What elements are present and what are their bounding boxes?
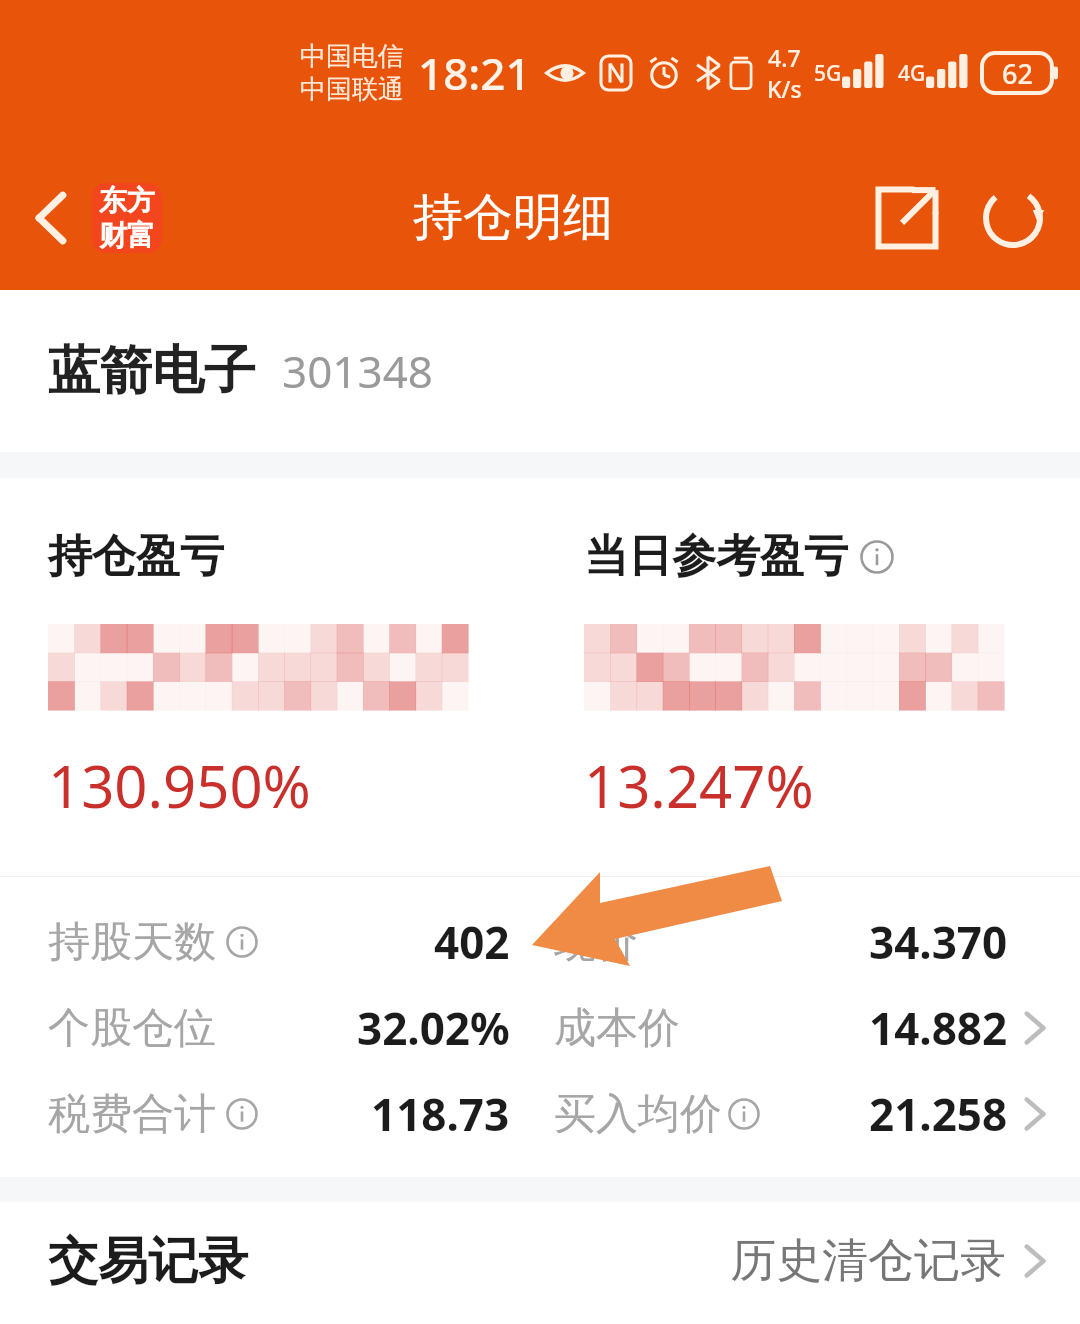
staticText: 5G <box>814 59 842 88</box>
staticText: 402 <box>434 912 510 972</box>
staticText: 18:21 <box>418 43 531 103</box>
staticText: 历史清仓记录 <box>730 1232 1006 1290</box>
staticText: 持仓盈亏 <box>48 529 224 584</box>
button[interactable]: 买入均价 <box>540 1071 1080 1157</box>
staticText: 301348 <box>282 341 434 401</box>
staticText: 蓝箭电子 <box>48 338 256 404</box>
button[interactable]: 个股仓位 <box>0 985 540 1071</box>
staticText: 118.73 <box>371 1084 510 1144</box>
staticText: 14.882 <box>869 998 1008 1058</box>
button[interactable]: 历史清仓记录 <box>730 1232 1046 1290</box>
staticText: K/s <box>767 73 802 104</box>
staticText: 东方 <box>99 183 155 218</box>
staticText: 持仓明细 <box>413 186 613 249</box>
button[interactable]: 现价 <box>540 899 1080 985</box>
staticText: 当日参考盈亏 <box>584 529 848 584</box>
button[interactable]: 持股天数 <box>0 899 540 985</box>
staticText: 持股天数 <box>48 916 216 969</box>
button[interactable]: 交易记录 <box>48 1230 248 1293</box>
staticText: 税费合计 <box>48 1088 216 1141</box>
staticText: 62 <box>1002 55 1033 92</box>
staticText: 成本价 <box>554 1002 680 1055</box>
staticText: 现价 <box>554 916 638 969</box>
button[interactable]: Share <box>864 175 950 261</box>
button[interactable]: 成本价 <box>540 985 1080 1071</box>
staticText: 交易记录 <box>48 1230 248 1293</box>
staticText: 13.247% <box>584 746 814 825</box>
staticText: 4G <box>898 59 926 88</box>
staticText: 32.02% <box>357 998 510 1058</box>
staticText: 财富 <box>99 218 155 253</box>
staticText: 中国电信 <box>300 40 404 73</box>
button[interactable]: 税费合计 <box>0 1071 540 1157</box>
staticText: 21.258 <box>869 1084 1008 1144</box>
button[interactable]: Back <box>24 190 80 246</box>
staticText: 买入均价 <box>554 1088 722 1141</box>
button[interactable]: 蓝箭电子 <box>0 290 1080 452</box>
staticText: 个股仓位 <box>48 1002 216 1055</box>
button[interactable]: East Money <box>92 183 162 253</box>
button[interactable]: Refresh <box>970 175 1056 261</box>
staticText: 4.7 <box>768 42 801 73</box>
staticText: 130.950% <box>48 746 311 825</box>
staticText: 34.370 <box>869 912 1008 972</box>
staticText: 中国联通 <box>300 73 404 106</box>
